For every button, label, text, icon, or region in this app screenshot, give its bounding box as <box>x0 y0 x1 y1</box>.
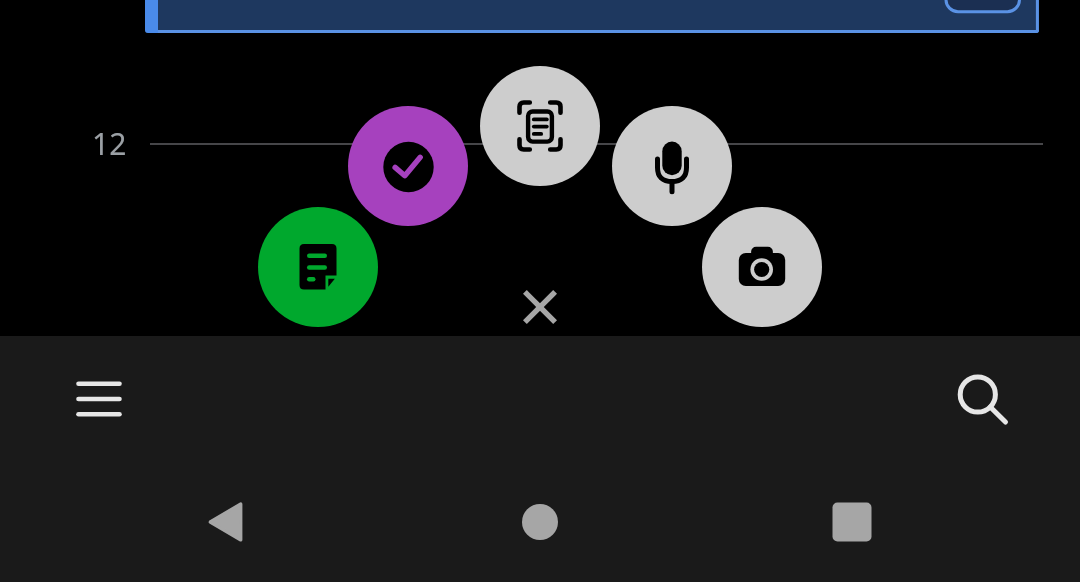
button[interactable]: Recent apps <box>816 486 888 558</box>
button[interactable]: New list, selected <box>348 106 468 226</box>
button[interactable]: Search <box>942 359 1022 439</box>
button[interactable]: Home <box>504 486 576 558</box>
button[interactable]: Close <box>504 271 576 343</box>
button[interactable]: Menu <box>59 359 139 439</box>
button[interactable]: Take photo <box>702 207 822 327</box>
staticText: 12 <box>92 123 127 164</box>
button[interactable]: New note <box>258 207 378 327</box>
button[interactable]: Back <box>190 486 262 558</box>
button[interactable] <box>145 0 1039 33</box>
button[interactable]: Voice note <box>612 106 732 226</box>
button[interactable]: Scan document <box>480 66 600 186</box>
